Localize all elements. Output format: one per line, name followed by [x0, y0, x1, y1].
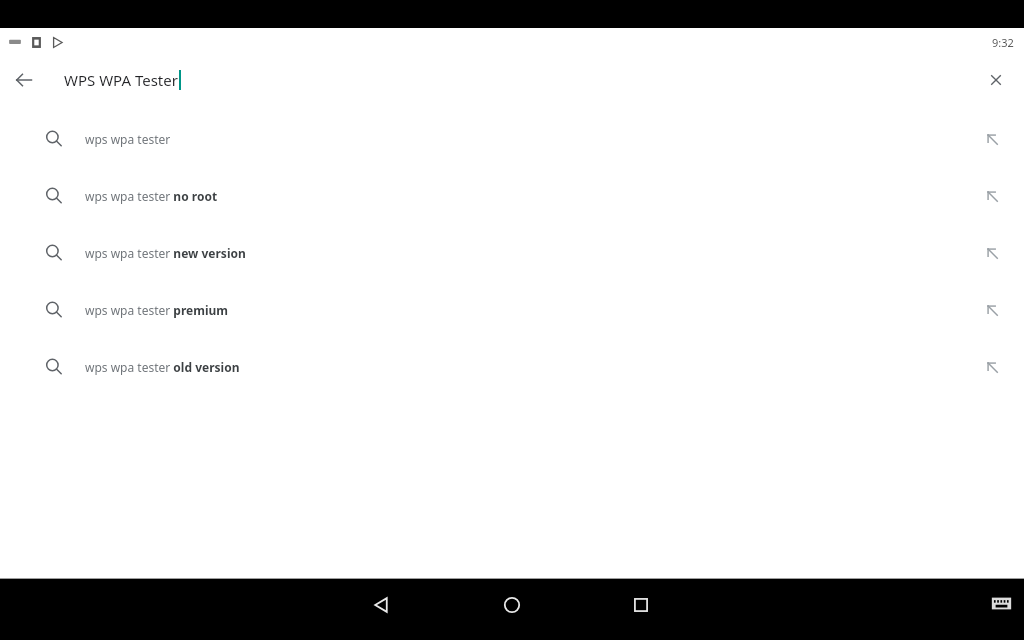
button[interactable]: Clear search: [974, 58, 1018, 102]
button[interactable]: Insert suggestion: [970, 117, 1014, 161]
button[interactable]: Insert suggestion: [970, 174, 1014, 218]
button[interactable]: Back: [358, 582, 404, 628]
button[interactable]: Back: [0, 56, 48, 104]
button[interactable]: wps wpa tester: [0, 110, 1024, 167]
button[interactable]: Recent apps: [618, 582, 664, 628]
button[interactable]: Show keyboard: [984, 586, 1018, 620]
staticText: 9:32: [992, 35, 1014, 50]
staticText: WPS WPA Tester: [64, 70, 178, 90]
staticText: wps wpa tester new version: [85, 245, 246, 261]
button[interactable]: WPS WPA Tester: [64, 56, 464, 104]
staticText: wps wpa tester no root: [85, 188, 218, 204]
button[interactable]: Insert suggestion: [970, 231, 1014, 275]
button[interactable]: wps wpa tester old version: [0, 338, 1024, 395]
staticText: wps wpa tester old version: [85, 359, 240, 375]
button[interactable]: Insert suggestion: [970, 345, 1014, 389]
staticText: wps wpa tester premium: [85, 302, 229, 318]
button[interactable]: wps wpa tester new version: [0, 224, 1024, 281]
button[interactable]: Insert suggestion: [970, 288, 1014, 332]
button[interactable]: Home: [489, 582, 535, 628]
staticText: wps wpa tester: [85, 131, 171, 147]
button[interactable]: wps wpa tester premium: [0, 281, 1024, 338]
button[interactable]: wps wpa tester no root: [0, 167, 1024, 224]
